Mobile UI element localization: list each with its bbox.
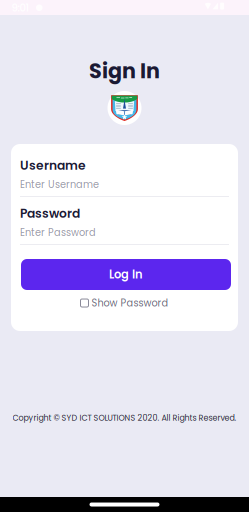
button[interactable]: Show Password	[20, 296, 229, 310]
button[interactable]: Log In	[21, 259, 231, 290]
staticText: Show Password	[91, 296, 168, 310]
staticText: Log In	[109, 266, 143, 283]
staticText: Enter Password	[20, 226, 96, 239]
staticText: 9:01	[11, 1, 29, 15]
staticText: Enter Username	[20, 178, 99, 191]
staticText: Sign In	[89, 56, 160, 85]
staticText: Password	[20, 205, 80, 222]
staticText: Username	[20, 157, 86, 174]
staticText: Copyright © SYD ICT SOLUTIONS 2020. All …	[12, 412, 236, 424]
